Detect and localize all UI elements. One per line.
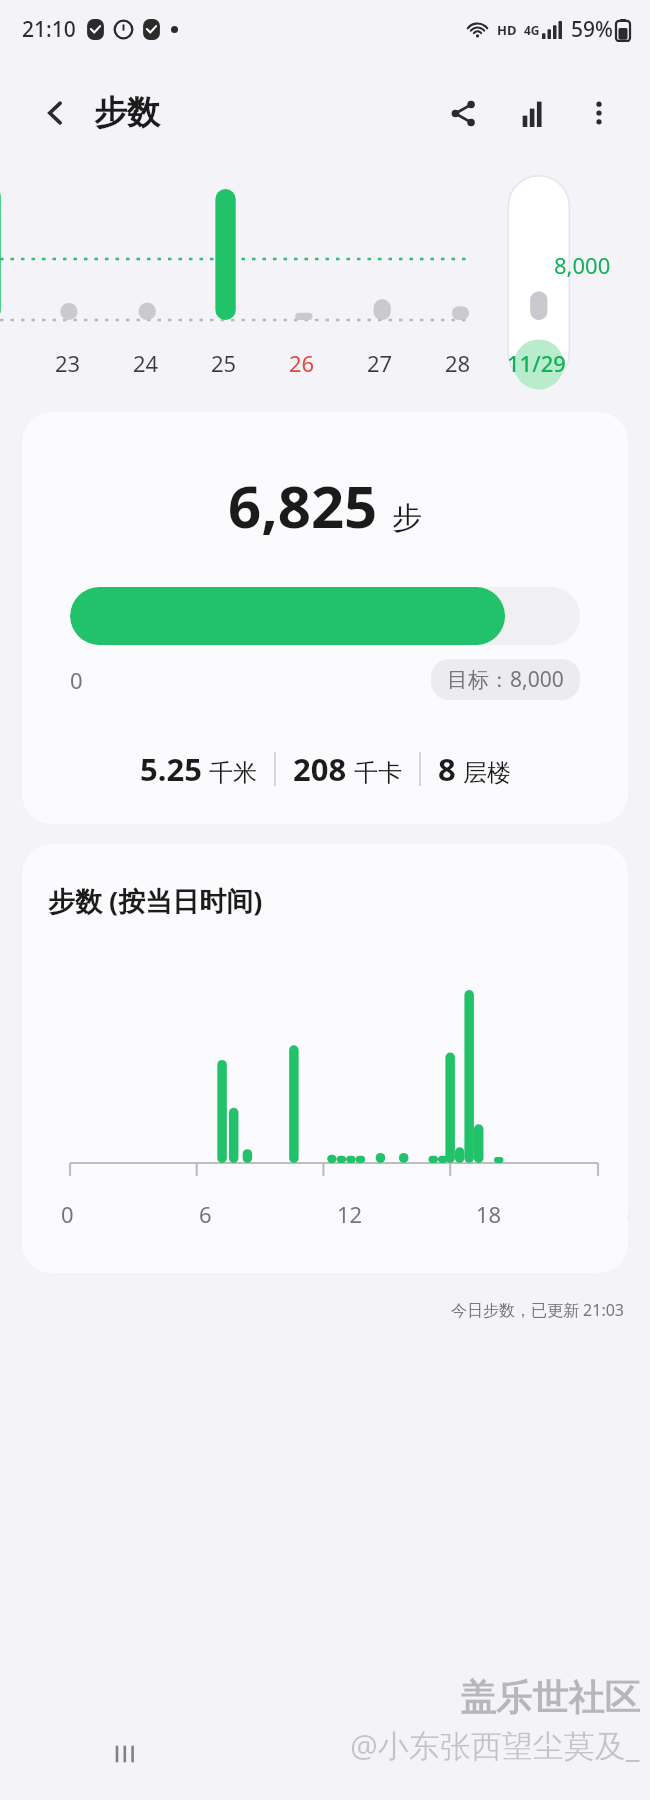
staticText: 11/29 (507, 348, 566, 378)
staticText: 4G (524, 22, 540, 38)
button[interactable]: More options (574, 88, 624, 138)
staticText: 21:10 (22, 15, 76, 44)
staticText: 23 (55, 348, 81, 378)
staticText: 208 (293, 748, 347, 790)
staticText: 8,000 (554, 250, 611, 280)
staticText: @小东张西望尘莫及_ (350, 1724, 640, 1766)
staticText: 27 (367, 348, 393, 378)
staticText: 59% (571, 15, 613, 44)
button[interactable]: 6,825 (22, 412, 628, 824)
staticText: 层楼 (463, 758, 511, 788)
button[interactable]: 步数 (按当日时间) (22, 844, 628, 1273)
staticText: 目标：8,000 (447, 665, 564, 694)
button[interactable]: Chart (508, 88, 558, 138)
staticText: 步数 (94, 92, 160, 134)
staticText: (时) (627, 1199, 628, 1229)
staticText: 18 (476, 1199, 502, 1229)
staticText: 26 (289, 348, 315, 378)
staticText: 千卡 (354, 758, 402, 788)
staticText: 5.25 (140, 748, 202, 790)
button[interactable]: Share (438, 88, 488, 138)
staticText: 0 (61, 1199, 74, 1229)
button[interactable]: Back (34, 91, 78, 135)
staticText: 28 (445, 348, 471, 378)
staticText: 盖乐世社区 (460, 1675, 640, 1720)
staticText: 步 (392, 499, 422, 537)
staticText: 步数 (按当日时间) (48, 882, 263, 919)
staticText: 千米 (209, 758, 257, 788)
staticText: 今日步数，已更新 21:03 (0, 1299, 624, 1321)
staticText: 12 (337, 1199, 363, 1229)
button[interactable]: Recents (104, 1730, 152, 1778)
staticText: 6,825 (228, 466, 378, 545)
staticText: HD (497, 21, 517, 39)
staticText: 24 (133, 348, 159, 378)
staticText: 0 (70, 665, 83, 695)
staticText: 8 (438, 748, 456, 790)
staticText: 6 (199, 1199, 212, 1229)
staticText: 25 (211, 348, 237, 378)
